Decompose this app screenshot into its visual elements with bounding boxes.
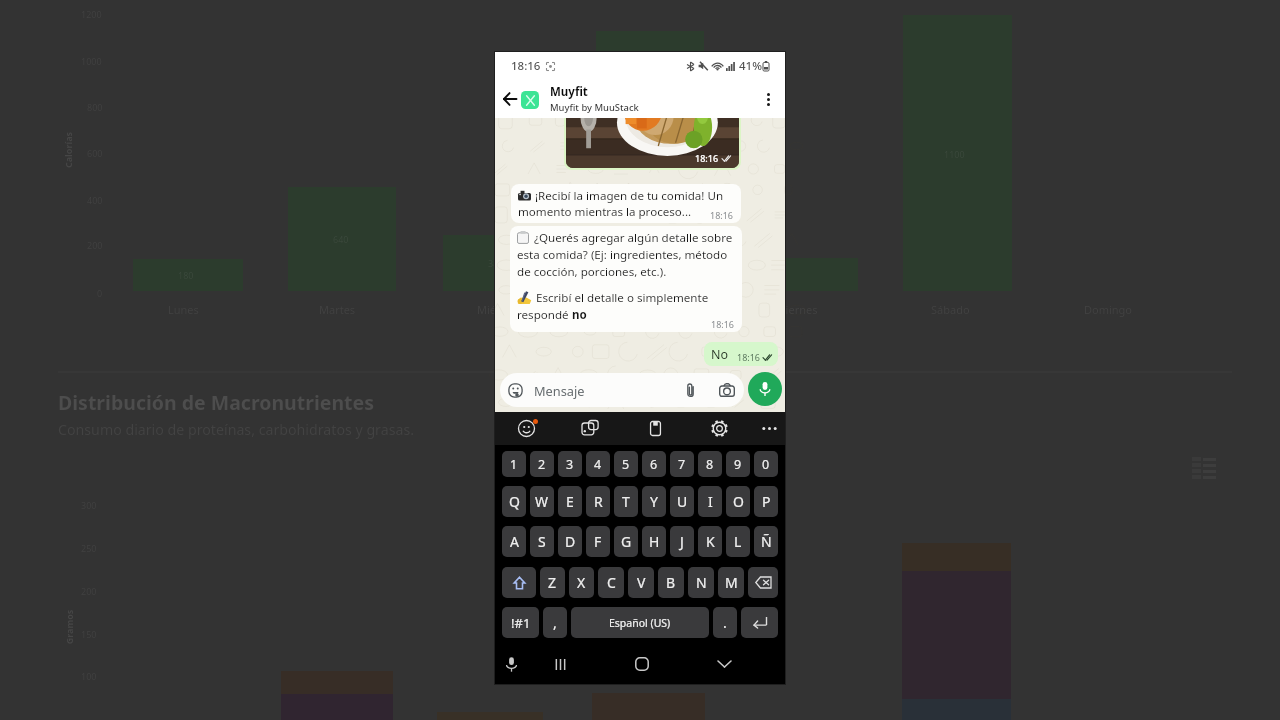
staticText: 300 [81,499,97,511]
staticText: J [680,532,684,551]
button[interactable]: N [688,567,714,598]
staticText: 100 [81,670,97,682]
button[interactable]: More options [755,86,781,112]
button[interactable]: I [698,486,722,517]
button[interactable]: Shift [502,567,536,598]
staticText: momento mientras la proceso... [518,204,692,220]
button[interactable]: V [628,567,654,598]
staticText: 150 [81,628,97,640]
button[interactable]: !#1 [502,607,539,638]
staticText: Lunes [168,302,199,317]
button[interactable]: Enter [741,607,778,638]
button[interactable]: 3 [558,451,582,477]
staticText: 18:16 [710,209,734,221]
button[interactable]: Record voice message [748,372,782,406]
button[interactable]: R [586,486,610,517]
staticText: M [725,573,738,592]
staticText: E [566,492,574,511]
button[interactable]: S [530,526,554,557]
button[interactable]: M [718,567,744,598]
button[interactable]: Muyfit [550,84,800,114]
button[interactable]: 4 [586,451,610,477]
button[interactable]: 2 [530,451,554,477]
button[interactable]: P [754,486,778,517]
button[interactable]: U [670,486,694,517]
staticText: 200 [87,239,103,251]
staticText: Escribí el detalle o simplemente [536,290,709,306]
button[interactable]: 1 [502,451,526,477]
staticText: ¿Querés agregar algún detalle sobre [534,230,733,246]
button[interactable]: J [670,526,694,557]
staticText: 6 [650,456,658,473]
staticText: 18:16 [711,318,735,330]
staticText: G [621,532,632,551]
button[interactable]: No [704,342,778,366]
staticText: L [734,532,742,551]
button[interactable]: Ñ [754,526,778,557]
staticText: 41% [739,58,762,74]
staticText: Español (US) [609,616,671,630]
button[interactable]: 6 [642,451,666,477]
staticText: esta comida? (Ej: ingredientes, método [517,247,728,263]
staticText: 600 [87,147,103,159]
staticText: S [538,532,546,551]
staticText: T [622,492,630,511]
button[interactable]: Emoji [510,412,542,445]
button[interactable]: 7 [670,451,694,477]
button[interactable]: Q [502,486,526,517]
button[interactable]: A [502,526,526,557]
button[interactable]: Clipboard [639,412,671,445]
button[interactable]: Stickers [574,412,606,445]
button[interactable]: Recent apps [544,644,576,684]
button[interactable]: , [543,607,567,638]
staticText: B [666,573,676,592]
button[interactable]: Settings [703,412,735,445]
staticText: Z [548,573,557,592]
button[interactable]: T [614,486,638,517]
button[interactable]: More [753,412,785,445]
staticText: . [723,613,727,632]
staticText: 1 [510,456,518,473]
button[interactable]: G [614,526,638,557]
button[interactable]: ¡Recibí la imagen de tu comida! Un [511,184,741,223]
staticText: 0 [762,456,770,473]
button[interactable]: Profile photo [521,91,539,109]
button[interactable]: Back [496,85,524,113]
button[interactable]: H [642,526,666,557]
button[interactable]: Home [626,644,658,684]
button[interactable]: F [586,526,610,557]
button[interactable]: Hide keyboard [708,644,740,684]
button[interactable]: E [558,486,582,517]
button[interactable]: 5 [614,451,638,477]
button[interactable]: Photo of a meal [566,112,739,168]
button[interactable]: Español (US) [571,607,709,638]
staticText: 640 [333,233,349,245]
button[interactable]: L [726,526,750,557]
button[interactable]: 9 [726,451,750,477]
button[interactable]: K [698,526,722,557]
button[interactable]: 8 [698,451,722,477]
button[interactable]: Z [540,567,565,598]
staticText: 1000 [81,55,102,67]
button[interactable]: . [713,607,737,638]
button[interactable]: Y [642,486,666,517]
button[interactable]: C [598,567,624,598]
button[interactable]: Mensaje [500,373,744,407]
button[interactable]: X [569,567,594,598]
button[interactable]: Voice input [495,644,527,684]
button[interactable]: Backspace [748,567,778,598]
button[interactable]: O [726,486,750,517]
staticText: A [510,532,519,551]
staticText: Q [509,492,520,511]
staticText: H [649,532,660,551]
staticText: Ñ [761,532,772,551]
staticText: 250 [81,542,97,554]
staticText: No [711,346,729,363]
button[interactable]: W [530,486,554,517]
button[interactable]: 0 [754,451,778,477]
button[interactable]: ¿Querés agregar algún detalle sobre [510,226,742,332]
staticText: U [677,492,688,511]
button[interactable]: B [658,567,684,598]
staticText: Muyfit by MuuStack [550,101,639,114]
button[interactable]: D [558,526,582,557]
